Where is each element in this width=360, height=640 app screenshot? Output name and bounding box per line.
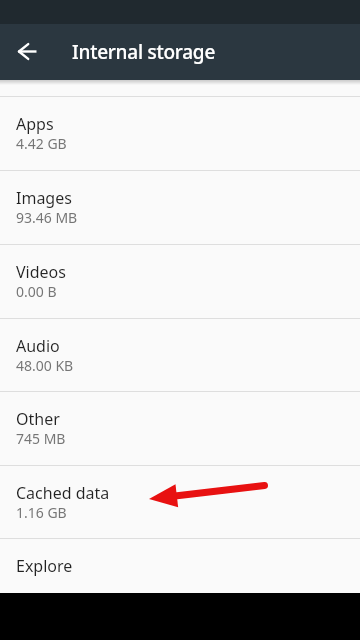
staticText: Other	[16, 408, 60, 430]
staticText: Cached data	[16, 482, 110, 504]
button[interactable]: Videos	[0, 245, 360, 318]
staticText: Audio	[16, 335, 60, 357]
button[interactable]: Explore	[0, 539, 360, 593]
staticText: 48.00 KB	[16, 356, 74, 375]
staticText: Videos	[16, 261, 66, 283]
staticText: 93.46 MB	[16, 208, 78, 227]
staticText: Apps	[16, 113, 54, 135]
button[interactable]	[0, 24, 56, 80]
button[interactable]: Cached data	[0, 466, 360, 538]
staticText: 745 MB	[16, 429, 66, 448]
staticText: 0.00 B	[16, 282, 57, 301]
staticText: Images	[16, 187, 72, 209]
staticText: Explore	[16, 555, 73, 577]
button[interactable]: Apps	[0, 97, 360, 170]
staticText: Internal storage	[72, 39, 216, 65]
staticText: 1.16 GB	[16, 503, 67, 522]
staticText: 4.42 GB	[16, 134, 67, 153]
button[interactable]: Audio	[0, 319, 360, 391]
button[interactable]: Other	[0, 392, 360, 465]
button[interactable]: Images	[0, 171, 360, 244]
